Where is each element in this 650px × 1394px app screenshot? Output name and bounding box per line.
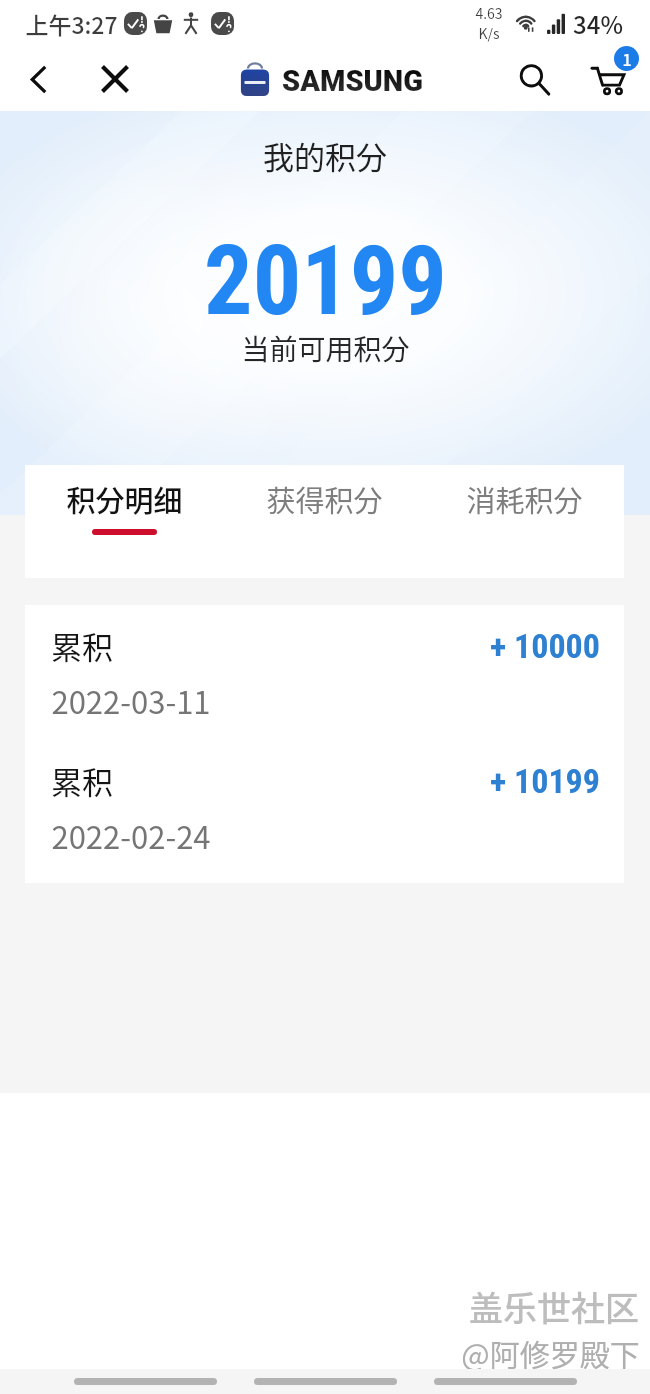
button[interactable]: 累积 <box>25 605 624 740</box>
staticText: 累积 <box>51 758 113 803</box>
staticText: 上午3:27 <box>25 7 118 40</box>
button[interactable]: 积分明细 <box>25 465 224 578</box>
button[interactable]: 消耗积分 <box>424 465 624 578</box>
staticText: @阿修罗殿下 <box>461 1331 640 1374</box>
button[interactable]: Recents <box>74 1369 217 1394</box>
button[interactable]: Search <box>508 53 560 105</box>
staticText: 当前可用积分 <box>241 328 410 369</box>
staticText: 1 <box>622 47 632 70</box>
button[interactable]: Close <box>90 54 140 104</box>
button[interactable]: 累积 <box>25 740 624 875</box>
button[interactable]: Shopping cart <box>582 50 640 108</box>
staticText: 20199 <box>204 225 447 338</box>
button[interactable]: 获得积分 <box>224 465 424 578</box>
staticText: 2022-03-11 <box>51 678 211 723</box>
button[interactable]: Back <box>13 54 63 104</box>
staticText: 2022-02-24 <box>51 813 211 858</box>
button[interactable]: Back <box>434 1369 577 1394</box>
staticText: + 10199 <box>490 761 600 801</box>
staticText: K/s <box>478 23 500 43</box>
staticText: + 10000 <box>490 626 600 666</box>
staticText: 累积 <box>51 623 113 668</box>
button[interactable]: Home <box>254 1369 397 1394</box>
staticText: 消耗积分 <box>466 478 583 520</box>
staticText: 34% <box>573 6 623 41</box>
staticText: 4.63 <box>475 3 503 23</box>
staticText: 获得积分 <box>266 478 383 520</box>
staticText: 盖乐世社区 <box>469 1282 639 1331</box>
staticText: 积分明细 <box>66 478 183 520</box>
staticText: SAMSUNG <box>282 64 423 98</box>
staticText: 我的积分 <box>263 133 387 178</box>
